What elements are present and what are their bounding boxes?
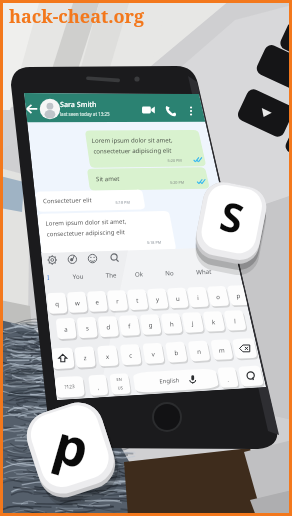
button[interactable] bbox=[0, 0, 292, 516]
